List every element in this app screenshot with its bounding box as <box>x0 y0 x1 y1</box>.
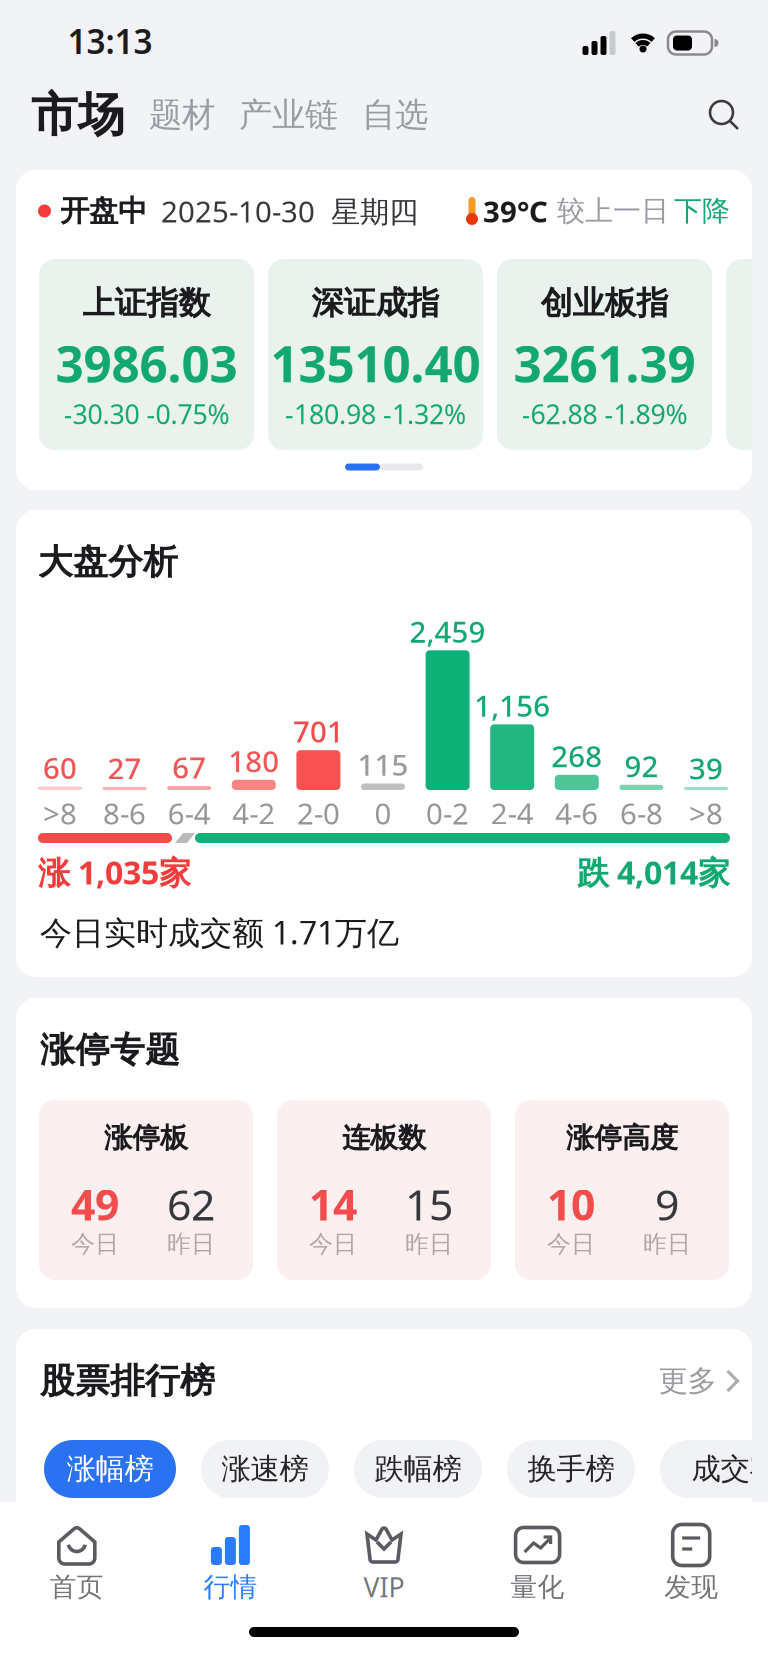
staticText: 2025-10-30 星期四 <box>161 191 418 230</box>
button[interactable]: 自选 <box>362 94 428 135</box>
staticText: 268 <box>551 736 602 775</box>
staticText: >8 <box>689 793 723 832</box>
staticText: 创业板指 <box>540 283 668 323</box>
staticText: 2,459 <box>410 612 486 651</box>
staticText: 3261.39 <box>513 330 695 396</box>
staticText: >8 <box>43 793 77 832</box>
button[interactable] <box>708 99 740 131</box>
button[interactable]: 换手榜 <box>507 1440 635 1498</box>
staticText: -180.98 -1.32% <box>285 396 466 432</box>
staticText: 92 <box>624 746 658 785</box>
staticText: 换手榜 <box>527 1451 614 1487</box>
staticText: 60 <box>43 748 77 787</box>
staticText: 6-4 <box>168 793 211 832</box>
staticText: 15 <box>405 1176 453 1232</box>
staticText: 题材 <box>149 94 215 135</box>
staticText: 701 <box>293 712 344 751</box>
button[interactable]: 成交额 <box>660 1440 768 1498</box>
staticText: 4-2 <box>232 793 275 832</box>
staticText: 6-8 <box>620 793 663 832</box>
staticText: 180 <box>228 741 279 780</box>
staticText: 大盘分析 <box>38 541 178 583</box>
staticText: 今日实时成交额 1.71万亿 <box>40 911 399 953</box>
button[interactable]: 更多 <box>658 1363 741 1399</box>
staticText: 今日 <box>309 1229 357 1259</box>
staticText: 跌幅榜 <box>374 1451 461 1487</box>
button[interactable]: 涨停板 <box>39 1100 253 1280</box>
staticText: 4-6 <box>555 793 598 832</box>
button[interactable]: 涨速榜 <box>201 1440 329 1498</box>
button[interactable]: 行情 <box>154 1502 307 1622</box>
button[interactable]: 连板数 <box>277 1100 491 1280</box>
staticText: 2-0 <box>297 793 340 832</box>
staticText: -30.30 -0.75% <box>63 396 229 432</box>
staticText: 深证成指 <box>311 283 439 323</box>
button[interactable]: 产业链 <box>239 94 338 135</box>
button[interactable]: 市场 <box>31 86 125 144</box>
button[interactable]: 创业板指 <box>497 259 712 450</box>
button[interactable]: 题材 <box>149 94 215 135</box>
button[interactable]: 涨停高度 <box>515 1100 729 1280</box>
staticText: 13:13 <box>67 19 152 63</box>
staticText: 股票排行榜 <box>40 1360 215 1402</box>
staticText: 自选 <box>362 94 428 135</box>
staticText: 昨日 <box>643 1229 691 1259</box>
staticText: 39 <box>689 748 723 787</box>
staticText: 115 <box>357 745 408 784</box>
staticText: 27 <box>108 748 142 787</box>
button[interactable]: VIP <box>307 1502 461 1622</box>
button[interactable]: 上证指数 <box>39 259 254 450</box>
staticText: 涨停专题 <box>40 1029 180 1071</box>
staticText: 行情 <box>203 1571 257 1603</box>
staticText: 8-6 <box>103 793 146 832</box>
button[interactable]: 跌幅榜 <box>354 1440 482 1498</box>
staticText: 产业链 <box>239 94 338 135</box>
staticText: -62.88 -1.89% <box>521 396 687 432</box>
staticText: 0 <box>374 793 391 832</box>
staticText: 今日 <box>71 1229 119 1259</box>
staticText: 市场 <box>31 86 125 144</box>
staticText: 涨速榜 <box>221 1451 308 1487</box>
staticText: 开盘中 <box>60 193 147 229</box>
staticText: 跌 4,014家 <box>577 851 730 893</box>
staticText: 昨日 <box>405 1229 453 1259</box>
staticText: 3986.03 <box>55 330 237 396</box>
button[interactable]: 涨幅榜 <box>44 1440 176 1498</box>
staticText: 量化 <box>511 1571 565 1603</box>
staticText: 涨幅榜 <box>66 1451 153 1487</box>
staticText: 首页 <box>50 1571 104 1603</box>
button[interactable]: 量化 <box>461 1502 614 1622</box>
staticText: 较上一日 <box>557 194 669 228</box>
staticText: 13510.40 <box>270 330 480 396</box>
staticText: 0-2 <box>426 793 469 832</box>
staticText: 9 <box>655 1176 679 1232</box>
staticText: 39°C <box>483 191 548 230</box>
staticText: 连板数 <box>342 1121 426 1155</box>
staticText: 涨 1,035家 <box>38 851 191 893</box>
button[interactable]: 深证成指 <box>268 259 483 450</box>
staticText: 涨停高度 <box>566 1121 678 1155</box>
staticText: 49 <box>71 1176 119 1232</box>
staticText: 下降 <box>674 194 730 228</box>
staticText: 涨停板 <box>104 1121 188 1155</box>
staticText: 1,156 <box>474 686 550 725</box>
staticText: 62 <box>167 1176 215 1232</box>
button[interactable]: 首页 <box>0 1502 154 1622</box>
staticText: 昨日 <box>167 1229 215 1259</box>
staticText: 上证指数 <box>82 283 210 323</box>
staticText: 发现 <box>664 1571 718 1603</box>
staticText: 10 <box>547 1176 595 1232</box>
button[interactable]: 发现 <box>614 1502 768 1622</box>
staticText: VIP <box>363 1569 404 1605</box>
staticText: 成交额 <box>691 1451 768 1487</box>
staticText: 67 <box>172 748 206 787</box>
staticText: 14 <box>309 1176 357 1232</box>
staticText: 更多 <box>658 1363 716 1399</box>
staticText: 今日 <box>547 1229 595 1259</box>
staticText: 2-4 <box>491 793 534 832</box>
